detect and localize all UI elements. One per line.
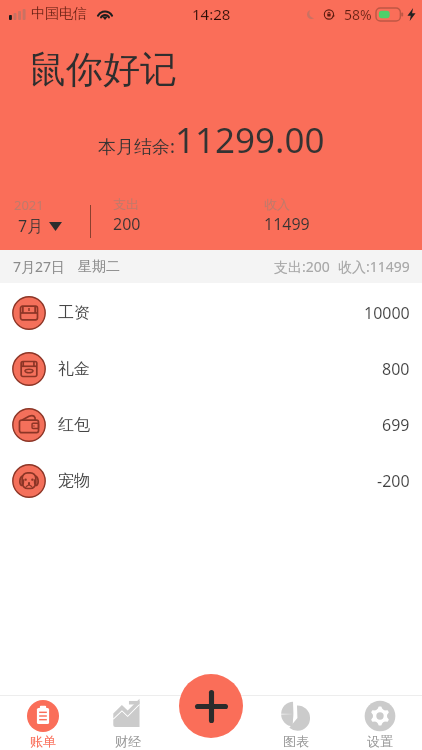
button[interactable]: 工资 <box>0 285 422 341</box>
staticText: 699 <box>382 414 410 436</box>
button[interactable]: 宠物 <box>0 453 422 509</box>
button[interactable]: Add <box>179 674 243 738</box>
staticText: 收入:11499 <box>338 257 410 276</box>
staticText: 7月 <box>18 215 44 237</box>
staticText: 支出 <box>113 196 139 212</box>
staticText: 14:28 <box>192 4 231 24</box>
staticText: 设置 <box>367 733 393 749</box>
staticText: 支出:200 <box>274 257 330 276</box>
staticText: 工资 <box>58 303 90 323</box>
staticText: 中国电信 <box>31 5 87 23</box>
staticText: 星期二 <box>78 258 120 276</box>
staticText: -200 <box>377 470 410 492</box>
staticText: 7月27日 <box>13 257 66 276</box>
staticText: 财经 <box>115 733 141 749</box>
staticText: 58% <box>344 5 372 24</box>
staticText: 2021 <box>14 196 44 214</box>
staticText: 宠物 <box>58 471 90 491</box>
staticText: 账单 <box>30 733 56 749</box>
staticText: 礼金 <box>58 359 90 379</box>
button[interactable]: 礼金 <box>0 341 422 397</box>
button[interactable]: 设置 <box>338 695 422 750</box>
staticText: 本月结余: <box>98 134 175 159</box>
staticText: 图表 <box>283 733 309 749</box>
staticText: 红包 <box>58 415 90 435</box>
staticText: 收入 <box>264 196 290 212</box>
button[interactable]: 红包 <box>0 397 422 453</box>
button[interactable]: 财经 <box>85 695 170 750</box>
staticText: 200 <box>113 213 141 235</box>
staticText: 800 <box>382 358 410 380</box>
staticText: 10000 <box>364 302 410 324</box>
staticText: 11299.00 <box>175 116 325 164</box>
button[interactable]: 图表 <box>254 695 338 750</box>
button[interactable]: 账单 <box>0 695 85 750</box>
staticText: 鼠你好记 <box>29 46 177 93</box>
staticText: 11499 <box>264 213 310 235</box>
